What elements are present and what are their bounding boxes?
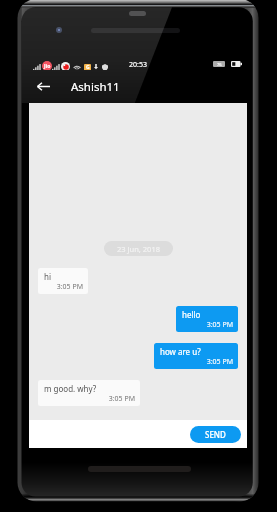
staticText: Ashish11 xyxy=(71,79,120,95)
staticText: 3:05 PM xyxy=(182,320,233,330)
button[interactable]: Back xyxy=(29,70,57,103)
staticText: Jio xyxy=(44,63,51,70)
staticText: G xyxy=(86,64,90,71)
button[interactable]: m good. why? xyxy=(38,380,140,406)
staticText: hi xyxy=(44,271,52,282)
button[interactable]: how are u? xyxy=(154,343,238,369)
staticText: SEND xyxy=(205,429,226,440)
button[interactable]: SEND xyxy=(190,426,241,443)
staticText: hello xyxy=(182,309,201,320)
staticText: 3:05 PM xyxy=(44,282,83,292)
button[interactable]: hi xyxy=(38,268,88,294)
staticText: 3:05 PM xyxy=(44,394,135,404)
staticText: m good. why? xyxy=(44,383,97,394)
staticText: 76 xyxy=(217,62,222,67)
staticText: 23 Jun, 2018 xyxy=(117,244,160,254)
button[interactable]: hello xyxy=(176,306,238,332)
staticText: how are u? xyxy=(160,346,201,357)
staticText: 3:05 PM xyxy=(160,357,233,367)
staticText: 20:53 xyxy=(129,60,147,70)
